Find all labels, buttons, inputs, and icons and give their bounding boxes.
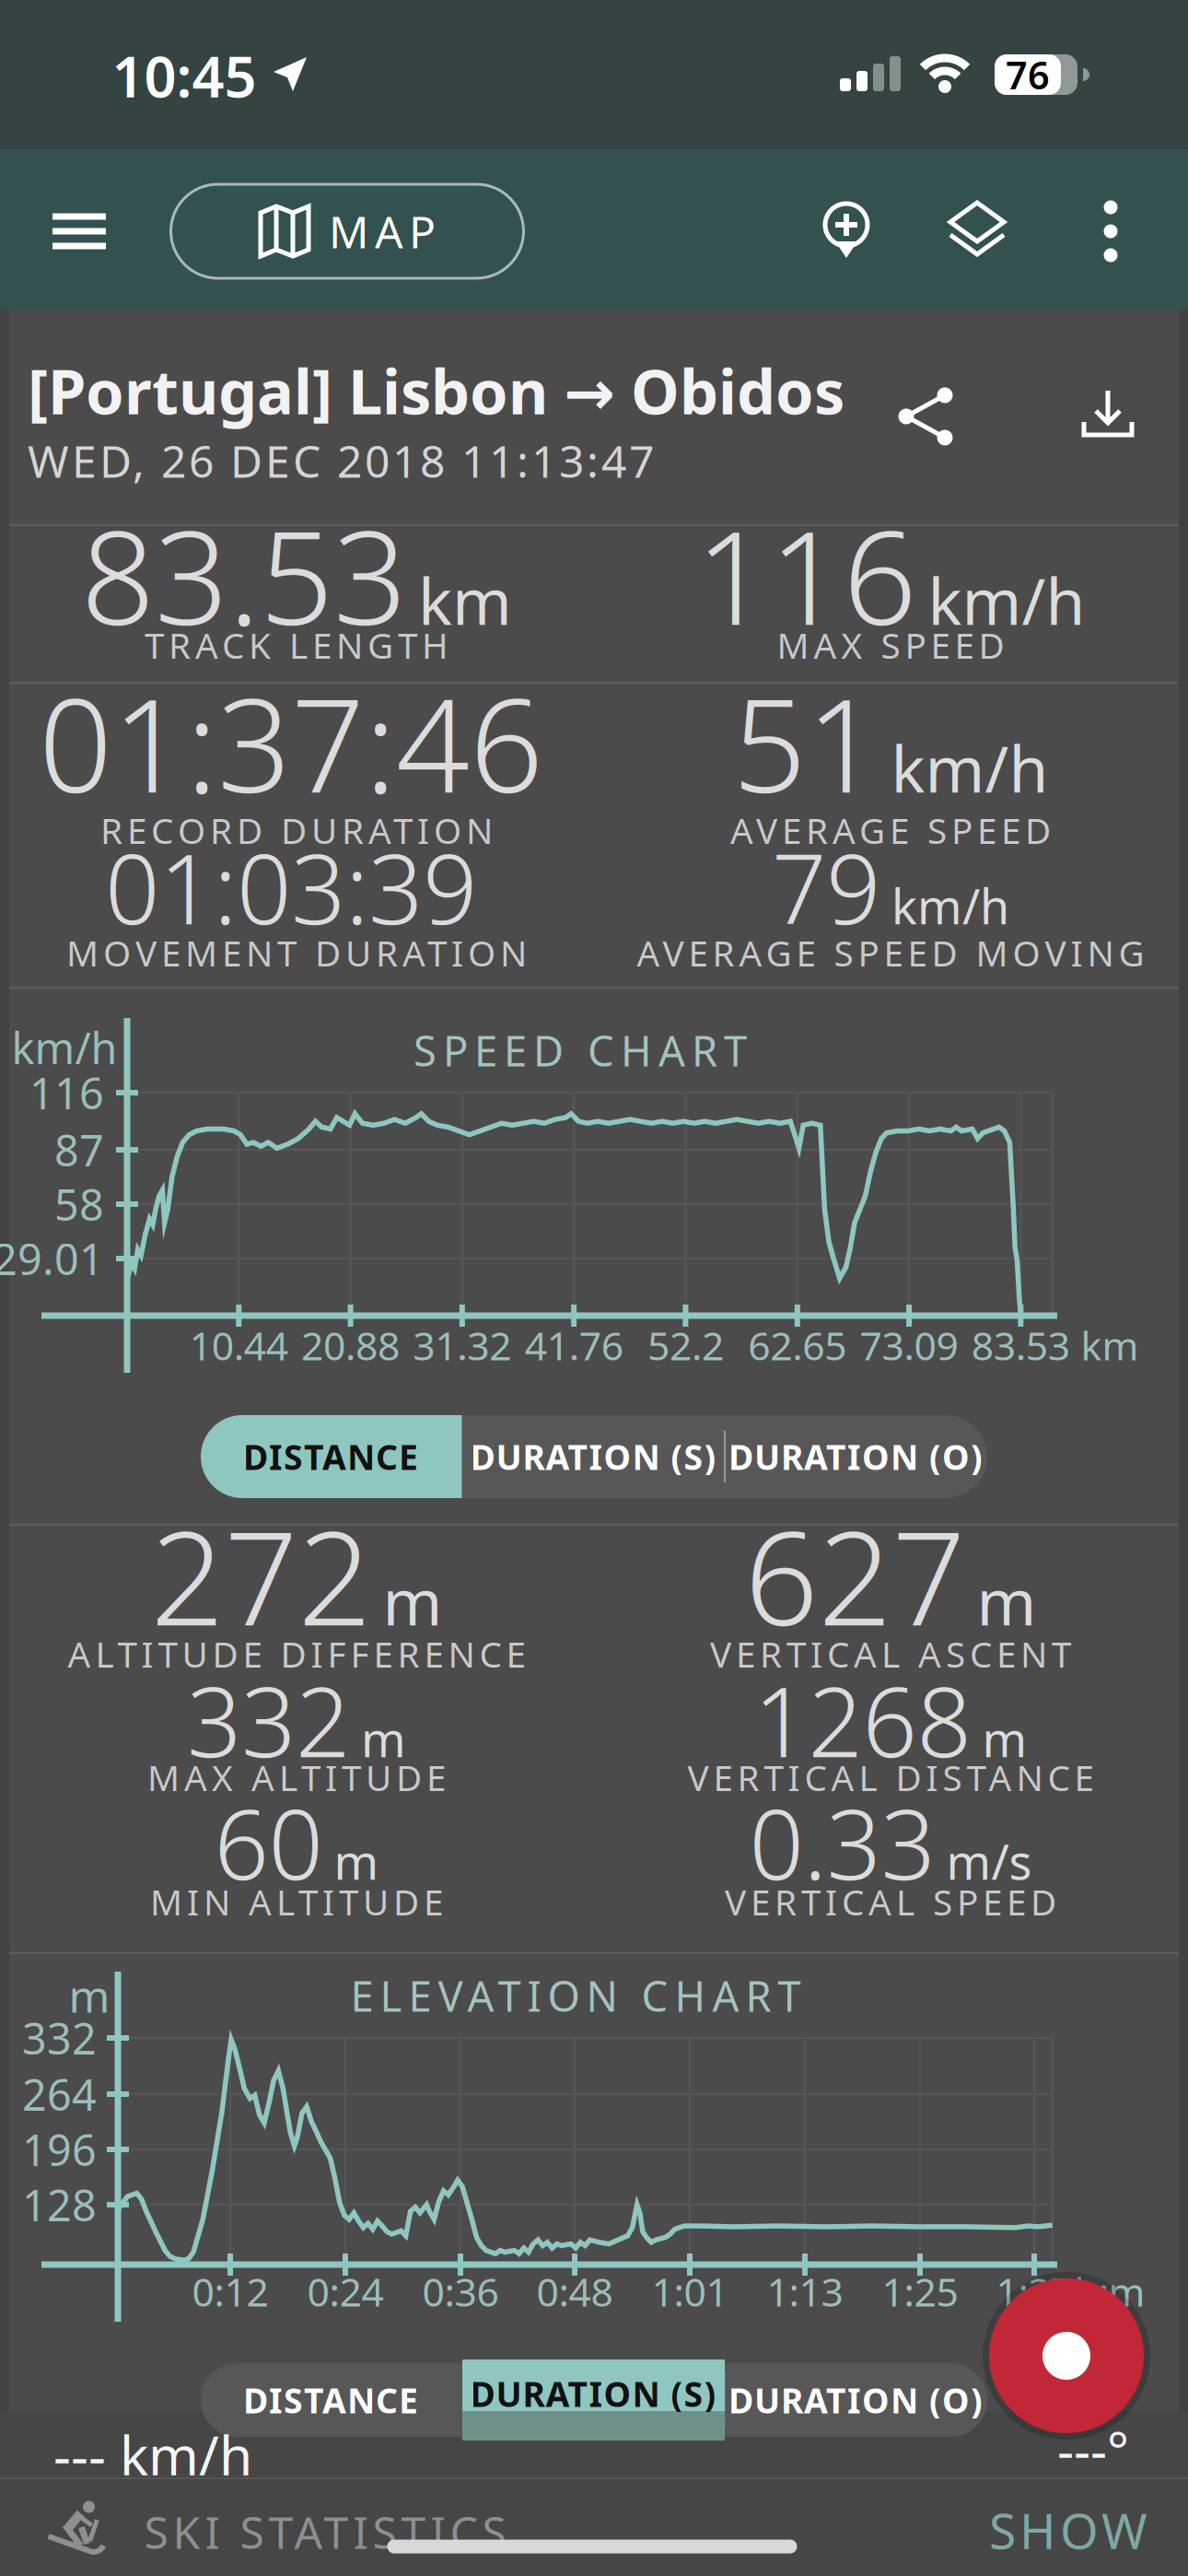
staticText: 1268: [754, 1656, 971, 1784]
staticText: MAX SPEED: [777, 621, 1004, 669]
staticText: MIN ALTITUDE: [150, 1878, 443, 1925]
staticText: 196: [22, 2121, 97, 2178]
staticText: TRACK LENGTH: [145, 621, 448, 669]
staticText: 332: [187, 1656, 350, 1784]
staticText: MAX ALTITUDE: [147, 1754, 446, 1801]
staticText: 1:25: [882, 2265, 958, 2317]
button[interactable]: [948, 201, 1007, 260]
staticText: DURATION (S): [470, 2371, 716, 2416]
staticText: SKI STATISTICS: [144, 2502, 506, 2561]
staticText: m: [334, 1829, 379, 1893]
staticText: 83.53: [81, 489, 407, 660]
staticText: DURATION (O): [728, 1434, 983, 1479]
staticText: 62.65: [748, 1319, 847, 1371]
staticText: 31.32: [413, 1319, 511, 1371]
button[interactable]: [52, 213, 106, 249]
staticText: 0.33: [749, 1779, 935, 1906]
staticText: 73.09: [860, 1319, 958, 1371]
staticText: 0:12: [192, 2265, 268, 2317]
staticText: 52.2: [647, 1319, 724, 1371]
staticText: 76: [1006, 49, 1050, 100]
button[interactable]: DURATION (S): [461, 1415, 725, 1498]
staticText: 627: [745, 1490, 966, 1661]
staticText: AVERAGE SPEED: [730, 806, 1051, 854]
button[interactable]: [983, 2272, 1150, 2440]
staticText: 272: [151, 1490, 372, 1661]
button[interactable]: DISTANCE: [200, 2363, 461, 2437]
staticText: m: [69, 1966, 110, 2025]
staticText: ALTITUDE DIFFERENCE: [68, 1630, 525, 1677]
staticText: m: [383, 1558, 443, 1643]
staticText: 128: [22, 2176, 97, 2233]
staticText: 0:48: [536, 2265, 613, 2317]
button[interactable]: DISTANCE: [200, 1415, 461, 1498]
staticText: 332: [22, 2009, 97, 2067]
staticText: 29.01: [0, 1230, 104, 1287]
staticText: SHOW: [989, 2497, 1147, 2563]
button[interactable]: SHOW: [989, 2497, 1147, 2563]
staticText: AVERAGE SPEED MOVING: [637, 929, 1144, 976]
staticText: ELEVATION CHART: [350, 1968, 801, 2023]
staticText: km/h: [12, 1019, 117, 1076]
button[interactable]: [1078, 387, 1137, 446]
button[interactable]: [1104, 200, 1118, 262]
staticText: 41.76: [525, 1319, 623, 1371]
button[interactable]: MAP: [171, 184, 524, 278]
staticText: ---°: [1057, 2416, 1129, 2484]
staticText: 1:13: [767, 2265, 843, 2317]
button[interactable]: [897, 387, 956, 446]
staticText: VERTICAL DISTANCE: [687, 1754, 1094, 1801]
button[interactable]: SKI STATISTICS: [47, 2500, 506, 2564]
staticText: m/s: [946, 1829, 1032, 1893]
staticText: MAP: [329, 202, 436, 261]
staticText: km/h: [891, 874, 1009, 938]
staticText: 10:45: [112, 38, 256, 113]
staticText: 01:37:46: [39, 657, 543, 828]
staticText: 1:37: [996, 2265, 1072, 2317]
staticText: 0:36: [422, 2265, 499, 2317]
staticText: km: [418, 558, 512, 643]
staticText: --- km/h: [53, 2418, 252, 2490]
staticText: MOVEMENT DURATION: [66, 929, 527, 976]
button[interactable]: [817, 201, 876, 260]
staticText: 51: [733, 657, 880, 828]
staticText: 58: [54, 1176, 104, 1233]
staticText: 60: [214, 1779, 323, 1906]
staticText: km: [1081, 1319, 1139, 1371]
staticText: h:m: [1074, 2265, 1145, 2317]
staticText: km/h: [891, 725, 1048, 810]
staticText: 10.44: [190, 1319, 288, 1371]
staticText: DURATION (O): [728, 2377, 983, 2423]
button[interactable]: DURATION (O): [724, 1415, 987, 1498]
button[interactable]: DURATION (O): [724, 2363, 987, 2437]
staticText: VERTICAL ASCENT: [710, 1630, 1071, 1677]
staticText: SPEED CHART: [413, 1023, 747, 1078]
staticText: 01:03:39: [105, 824, 477, 951]
staticText: 0:24: [307, 2265, 384, 2317]
staticText: DISTANCE: [243, 2377, 418, 2423]
staticText: 87: [54, 1121, 104, 1178]
staticText: 116: [29, 1064, 104, 1121]
staticText: DISTANCE: [243, 1434, 418, 1479]
staticText: RECORD DURATION: [100, 806, 493, 854]
staticText: 1:01: [652, 2265, 728, 2317]
staticText: 264: [22, 2066, 97, 2123]
staticText: 83.53: [971, 1319, 1070, 1371]
staticText: [Portugal] Lisbon → Obidos: [28, 350, 844, 431]
staticText: m: [361, 1707, 406, 1770]
staticText: WED, 26 DEC 2018 11:13:47: [28, 431, 654, 490]
staticText: m: [982, 1707, 1027, 1770]
staticText: km/h: [928, 558, 1085, 643]
staticText: 79: [772, 824, 880, 951]
staticText: 116: [696, 489, 917, 660]
staticText: 20.88: [301, 1319, 400, 1371]
staticText: VERTICAL SPEED: [725, 1878, 1056, 1925]
staticText: m: [977, 1558, 1037, 1643]
staticText: DURATION (S): [470, 1434, 716, 1479]
button[interactable]: DURATION (S): [461, 2357, 725, 2430]
